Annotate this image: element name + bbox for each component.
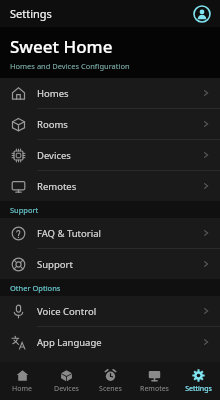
staticText: Homes and Devices Configuration bbox=[10, 61, 130, 71]
button[interactable]: Scenes bbox=[88, 362, 132, 400]
staticText: Other Options bbox=[10, 283, 61, 293]
staticText: Rooms bbox=[37, 118, 68, 131]
staticText: Sweet Home bbox=[10, 35, 113, 58]
staticText: App Language bbox=[37, 336, 102, 349]
staticText: Settings bbox=[185, 384, 212, 394]
button[interactable]: Remotes bbox=[132, 362, 176, 400]
button[interactable]: Account bbox=[192, 4, 212, 24]
staticText: Homes bbox=[37, 87, 69, 100]
button[interactable]: Voice Control bbox=[0, 296, 220, 326]
button[interactable]: Rooms bbox=[0, 109, 220, 139]
staticText: Remotes bbox=[140, 384, 169, 394]
staticText: Support bbox=[10, 205, 39, 215]
staticText: Devices bbox=[37, 149, 71, 162]
staticText: Voice Control bbox=[37, 305, 97, 318]
staticText: FAQ & Tutorial bbox=[37, 227, 101, 240]
button[interactable]: App Language bbox=[0, 327, 220, 357]
button[interactable]: Remotes bbox=[0, 171, 220, 201]
staticText: Scenes bbox=[99, 384, 122, 394]
button[interactable]: Homes bbox=[0, 78, 220, 108]
button[interactable]: FAQ & Tutorial bbox=[0, 218, 220, 248]
button[interactable]: Support bbox=[0, 249, 220, 279]
button[interactable]: Home bbox=[0, 362, 44, 400]
staticText: Settings bbox=[10, 6, 52, 21]
button[interactable]: Devices bbox=[0, 140, 220, 170]
button[interactable]: Devices bbox=[44, 362, 88, 400]
staticText: Home bbox=[12, 384, 32, 394]
staticText: Support bbox=[37, 258, 73, 271]
button[interactable]: Settings bbox=[176, 362, 220, 400]
staticText: Devices bbox=[54, 384, 79, 394]
staticText: Remotes bbox=[37, 180, 77, 193]
